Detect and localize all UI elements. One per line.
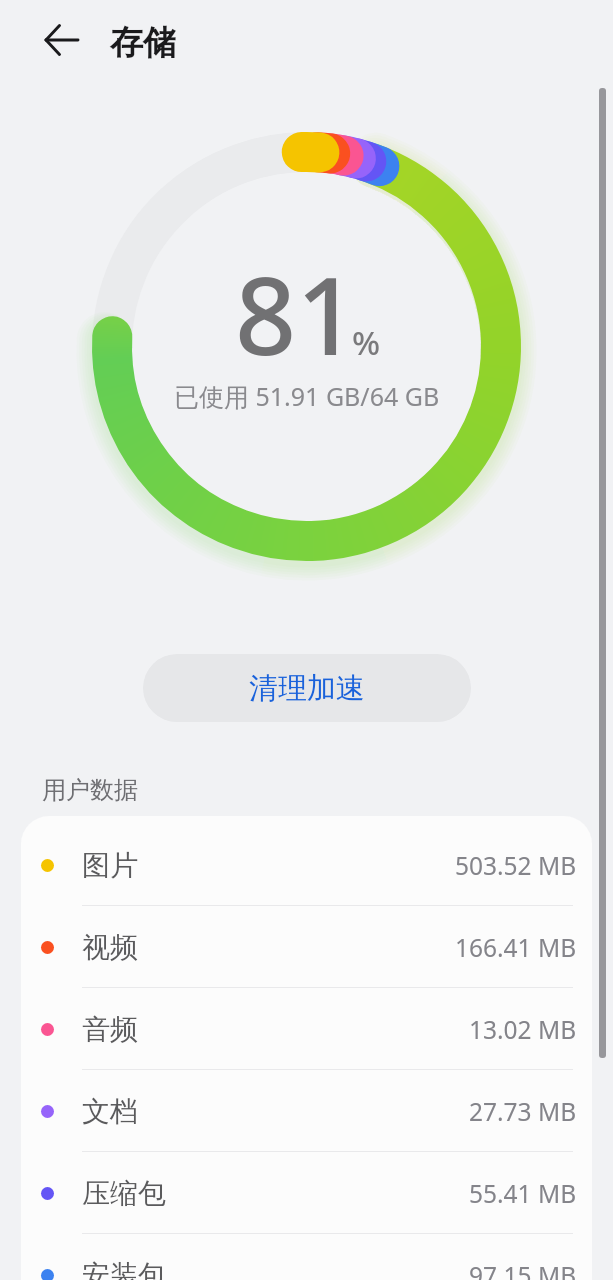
staticText: 存储: [110, 22, 176, 64]
button[interactable]: 音频: [21, 988, 592, 1070]
staticText: 用户数据: [42, 775, 138, 805]
button[interactable]: 安装包: [21, 1234, 592, 1280]
button[interactable]: 视频: [21, 906, 592, 988]
staticText: 166.41 MB: [455, 931, 577, 964]
staticText: 压缩包: [82, 1176, 166, 1211]
staticText: 音频: [82, 1012, 138, 1047]
staticText: 97.15 MB: [469, 1259, 577, 1280]
button[interactable]: Back: [21, 11, 79, 69]
staticText: %: [352, 320, 381, 365]
staticText: 13.02 MB: [469, 1013, 577, 1046]
staticText: 已使用 51.91 GB/64 GB: [174, 379, 440, 413]
button[interactable]: 图片: [21, 824, 592, 906]
staticText: 文档: [82, 1094, 138, 1129]
staticText: 55.41 MB: [469, 1177, 577, 1210]
button[interactable]: 清理加速: [143, 654, 471, 722]
staticText: 安装包: [82, 1258, 166, 1280]
staticText: 503.52 MB: [455, 849, 577, 882]
staticText: 视频: [82, 930, 138, 965]
staticText: 81: [235, 241, 358, 387]
staticText: 图片: [82, 848, 138, 883]
staticText: 清理加速: [249, 670, 365, 707]
button[interactable]: 压缩包: [21, 1152, 592, 1234]
button[interactable]: 文档: [21, 1070, 592, 1152]
staticText: 27.73 MB: [469, 1095, 577, 1128]
